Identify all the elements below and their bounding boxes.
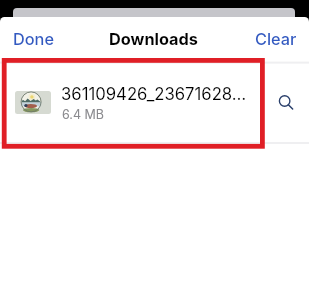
staticText: Clear	[255, 29, 297, 49]
staticText: 361109426_23671628…	[61, 84, 247, 104]
staticText: Done	[13, 29, 54, 49]
staticText: Downloads	[109, 29, 198, 49]
button[interactable]: 361109426_23671628…	[0, 64, 309, 142]
button[interactable]: Reveal in Files	[268, 84, 301, 117]
button[interactable]: Downloads	[101, 17, 206, 64]
button[interactable]: Done	[5, 17, 63, 64]
staticText: 6.4 MB	[62, 107, 104, 122]
button[interactable]: Clear	[247, 17, 306, 64]
